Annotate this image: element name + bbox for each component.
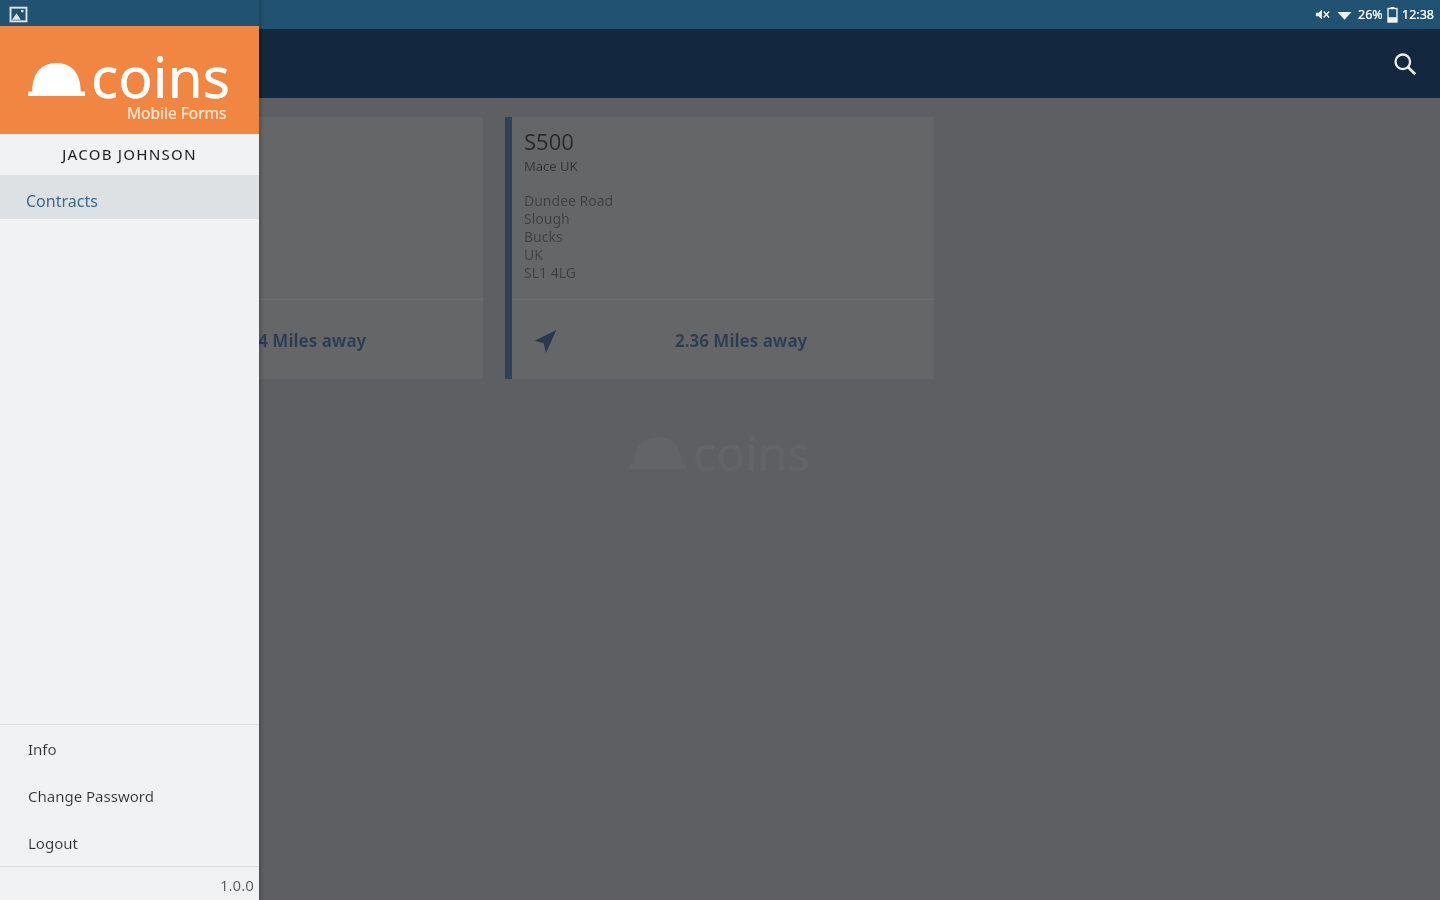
staticText: S500 xyxy=(524,126,574,156)
button[interactable]: S100 xyxy=(54,117,483,379)
staticText: Logout xyxy=(28,833,78,853)
staticText: 1.84 Miles away xyxy=(234,329,367,352)
staticText: Kings Road Reading Berks UK RG1 3AA xyxy=(73,191,147,282)
staticText: Mace UK xyxy=(524,157,578,175)
staticText: 1.0.0 xyxy=(220,875,254,895)
staticText: Info xyxy=(28,739,57,759)
staticText: JACOB JOHNSON xyxy=(62,144,197,164)
button[interactable]: Contracts xyxy=(0,175,259,219)
button[interactable]: Search xyxy=(1381,40,1429,88)
staticText: Change Password xyxy=(28,786,154,806)
staticText: 26% xyxy=(1358,6,1383,23)
button[interactable]: Info xyxy=(0,725,259,772)
staticText: 2.36 Miles away xyxy=(675,329,808,352)
staticText: Mace UK xyxy=(73,157,127,175)
staticText: Mobile Forms xyxy=(127,102,227,123)
button[interactable]: COINS Mobile Forms xyxy=(0,26,259,134)
staticText: coins xyxy=(91,37,231,115)
staticText: Contracts xyxy=(26,190,98,212)
button[interactable]: Logout xyxy=(0,819,259,866)
button[interactable]: S500 xyxy=(505,117,934,379)
staticText: Dundee Road Slough Bucks UK SL1 4LG xyxy=(524,191,614,282)
button[interactable]: Change Password xyxy=(0,772,259,819)
staticText: 12:38 xyxy=(1402,6,1434,23)
staticText: S100 xyxy=(73,126,123,156)
